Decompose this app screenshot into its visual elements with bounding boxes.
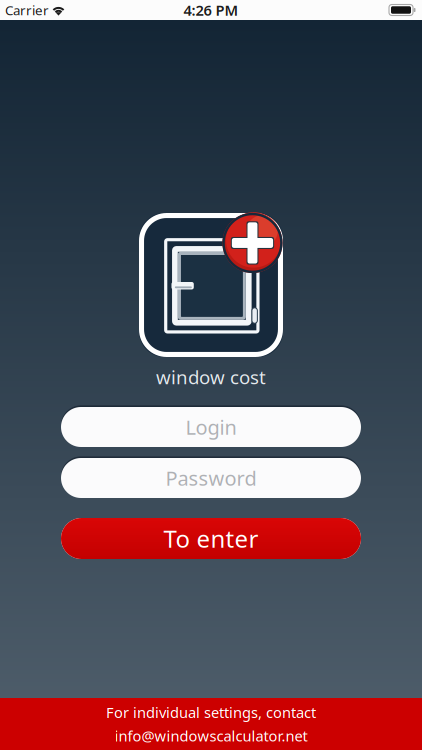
button[interactable]: Password [61,457,361,499]
staticText: window cost [156,365,266,389]
staticText: info@windowscalculator.net [114,726,307,745]
button[interactable]: For individual settings, contact [0,698,422,750]
staticText: For individual settings, contact [106,702,316,722]
button[interactable]: Login [61,406,361,448]
staticText: Password [165,465,256,491]
staticText: 4:26 PM [183,0,238,20]
button[interactable]: To enter [61,518,361,559]
staticText: To enter [163,523,258,554]
staticText: Login [185,414,236,440]
staticText: Carrier [5,1,49,19]
